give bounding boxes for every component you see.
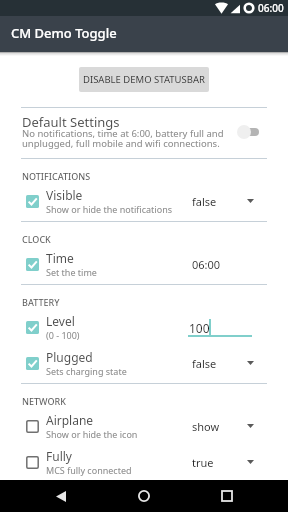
staticText: CLOCK [22, 233, 51, 245]
staticText: No notifications, time at 6:00, battery … [22, 127, 224, 140]
staticText: false [192, 356, 217, 371]
button[interactable]: Recent apps [205, 480, 249, 512]
button[interactable]: Back [39, 480, 83, 512]
staticText: 06:00 [192, 257, 221, 272]
staticText: Show or hide the notifications [46, 203, 173, 215]
staticText: Airplane [46, 412, 94, 428]
staticText: NETWORK [22, 395, 66, 407]
button[interactable]: Level [0, 309, 288, 345]
staticText: CM Demo Toggle [11, 24, 117, 42]
staticText: show [192, 419, 220, 434]
staticText: NOTIFICATIONS [22, 170, 91, 182]
staticText: DISABLE DEMO STATUSBAR [83, 73, 205, 86]
staticText: Level [46, 313, 75, 329]
staticText: Fully [46, 448, 72, 464]
staticText: true [192, 455, 214, 470]
button[interactable]: Visible [0, 183, 288, 219]
staticText: Default Settings [22, 113, 120, 131]
staticText: unplugged, full mobile and wifi connecti… [22, 137, 220, 150]
staticText: 100 [189, 320, 210, 336]
staticText: Plugged [46, 349, 93, 365]
button[interactable]: Fully [0, 444, 288, 480]
staticText: MCS fully connected [46, 464, 132, 476]
staticText: Time [46, 250, 74, 266]
button[interactable]: Plugged [0, 345, 288, 381]
staticText: Sets charging state [46, 365, 127, 377]
button[interactable]: Toggle default settings [236, 124, 262, 140]
button[interactable]: Default Settings [0, 108, 288, 158]
staticText: 06:00 [258, 1, 284, 15]
staticText: Set the time [46, 266, 97, 278]
staticText: (0 - 100) [46, 329, 80, 341]
button[interactable]: Time [0, 246, 288, 282]
button[interactable]: DISABLE DEMO STATUSBAR [79, 67, 209, 92]
staticText: BATTERY [22, 296, 60, 308]
button[interactable]: Airplane [0, 408, 288, 444]
staticText: Visible [46, 187, 83, 203]
staticText: false [192, 194, 217, 209]
staticText: Show or hide the icon [46, 428, 138, 440]
button[interactable]: Home [122, 480, 166, 512]
